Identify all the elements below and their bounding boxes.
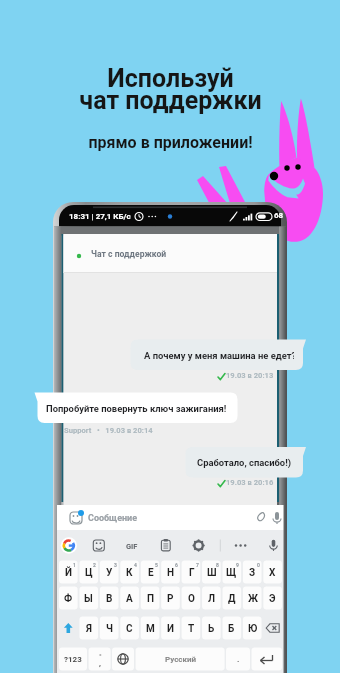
staticText: 19.03 в 20:13 bbox=[226, 371, 274, 380]
staticText: 2 bbox=[93, 562, 96, 568]
button[interactable]: Е bbox=[141, 561, 160, 584]
button[interactable]: М bbox=[141, 617, 160, 640]
button[interactable]: В bbox=[100, 587, 119, 610]
staticText: О bbox=[188, 593, 195, 605]
button[interactable]: ° bbox=[89, 645, 111, 668]
staticText: Support • 19.03 в 20:14 bbox=[64, 426, 153, 435]
button[interactable]: Ы bbox=[79, 587, 98, 610]
staticText: Ы bbox=[84, 593, 93, 605]
staticText: Ь bbox=[208, 623, 215, 635]
staticText: Б bbox=[228, 623, 235, 635]
staticText: 68 bbox=[274, 211, 284, 220]
staticText: Е bbox=[148, 567, 154, 579]
staticText: Сработало, спасибо!) bbox=[197, 457, 292, 468]
staticText: чат поддержки bbox=[79, 86, 262, 115]
staticText: Х bbox=[269, 567, 276, 579]
button[interactable]: GIF bbox=[120, 539, 144, 553]
staticText: Ч bbox=[106, 623, 113, 635]
staticText: Э bbox=[269, 593, 276, 605]
button[interactable]: Н bbox=[161, 561, 180, 584]
button[interactable]: ?123 bbox=[59, 648, 87, 671]
staticText: Попробуйте повернуть ключ зажигания! bbox=[46, 403, 226, 414]
button[interactable]: Э bbox=[263, 587, 282, 610]
button[interactable]: Л bbox=[202, 587, 221, 610]
staticText: Ж bbox=[248, 593, 258, 605]
button[interactable]: Ч bbox=[100, 617, 119, 640]
staticText: ° bbox=[99, 653, 102, 661]
staticText: Щ bbox=[226, 567, 237, 579]
button[interactable]: Ж bbox=[243, 587, 262, 610]
staticText: 3 bbox=[114, 562, 117, 568]
staticText: Сообщение bbox=[88, 513, 138, 524]
staticText: А bbox=[126, 593, 133, 605]
staticText: Н bbox=[167, 567, 175, 579]
button[interactable]: Я bbox=[79, 617, 98, 640]
button[interactable]: . bbox=[226, 648, 250, 671]
staticText: 4 bbox=[134, 562, 137, 568]
staticText: Русский bbox=[165, 655, 197, 664]
button[interactable]: Чат с поддержкой bbox=[64, 240, 278, 268]
staticText: прямо в приложении! bbox=[88, 133, 253, 152]
staticText: 9 bbox=[236, 562, 239, 568]
staticText: Ц bbox=[85, 567, 93, 579]
button[interactable]: Ю bbox=[243, 617, 262, 640]
staticText: ?123 bbox=[64, 655, 82, 664]
staticText: Т bbox=[188, 623, 195, 635]
staticText: Л bbox=[208, 593, 216, 605]
staticText: GIF bbox=[126, 542, 138, 551]
staticText: 19.03 в 20:16 bbox=[226, 478, 274, 487]
button[interactable]: А bbox=[120, 587, 139, 610]
staticText: 6 bbox=[175, 562, 178, 568]
staticText: Ш bbox=[207, 567, 217, 579]
staticText: 5 bbox=[155, 562, 158, 568]
button[interactable]: Д bbox=[222, 587, 241, 610]
staticText: В bbox=[106, 593, 113, 605]
staticText: К bbox=[126, 567, 133, 579]
staticText: Д bbox=[228, 593, 236, 605]
staticText: М bbox=[146, 623, 155, 635]
staticText: Г bbox=[189, 567, 195, 579]
button[interactable]: Р bbox=[161, 587, 180, 610]
button[interactable]: Ь bbox=[202, 617, 221, 640]
button[interactable]: Й bbox=[59, 561, 78, 584]
staticText: И bbox=[167, 623, 175, 635]
button[interactable]: Т bbox=[182, 617, 201, 640]
staticText: 18:31 | 27,1 КБ/с bbox=[69, 212, 131, 221]
staticText: Ю bbox=[248, 623, 258, 635]
button[interactable]: Г bbox=[182, 561, 201, 584]
staticText: 1 bbox=[73, 562, 76, 568]
button[interactable]: Х bbox=[263, 561, 282, 584]
button[interactable]: О bbox=[182, 587, 201, 610]
staticText: 0 bbox=[257, 562, 260, 568]
staticText: У bbox=[106, 567, 113, 579]
staticText: Р bbox=[167, 593, 174, 605]
staticText: , bbox=[99, 659, 101, 668]
staticText: 7 bbox=[196, 562, 199, 568]
button[interactable]: С bbox=[120, 617, 139, 640]
staticText: Я bbox=[86, 623, 92, 635]
staticText: А почему у меня машина не едет? bbox=[144, 350, 294, 361]
button[interactable]: Ф bbox=[59, 587, 78, 610]
button[interactable]: И bbox=[161, 617, 180, 640]
staticText: П bbox=[147, 593, 155, 605]
staticText: Й bbox=[65, 567, 73, 579]
staticText: Используй bbox=[107, 64, 234, 93]
staticText: С bbox=[126, 623, 133, 635]
button[interactable]: Щ bbox=[222, 561, 241, 584]
button[interactable]: З bbox=[243, 561, 262, 584]
staticText: 8 bbox=[216, 562, 219, 568]
button[interactable]: Ц bbox=[79, 561, 98, 584]
button[interactable]: Русский bbox=[136, 648, 225, 671]
button[interactable]: Ш bbox=[202, 561, 221, 584]
button[interactable]: П bbox=[141, 587, 160, 610]
staticText: З bbox=[249, 567, 256, 579]
button[interactable]: К bbox=[120, 561, 139, 584]
staticText: Чат с поддержкой bbox=[91, 249, 167, 259]
button[interactable]: , bbox=[89, 652, 111, 673]
button[interactable]: У bbox=[100, 561, 119, 584]
staticText: . bbox=[237, 655, 240, 664]
button[interactable]: Б bbox=[222, 617, 241, 640]
staticText: Ф bbox=[64, 593, 73, 605]
